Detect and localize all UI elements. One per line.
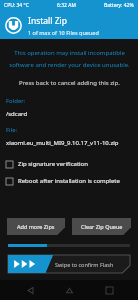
button[interactable]: Add more Zips: [7, 218, 65, 235]
staticText: 1 of max of 10 Files queued: [28, 29, 99, 36]
staticText: Folder:: [6, 97, 26, 105]
staticText: Add more Zips: [17, 223, 55, 230]
staticText: xiaomi.eu_multi_MI9_9.10.17_v11-10.zip: [6, 139, 119, 147]
staticText: Press back to cancel adding this zip.: [19, 79, 120, 87]
staticText: 6:32 AM: [57, 2, 76, 9]
button[interactable]: Back: [20, 280, 40, 300]
other: TWRP: [5, 17, 22, 34]
staticText: /sdcard: [6, 110, 28, 118]
staticText: Reboot after installation is complete: [18, 177, 120, 185]
button[interactable]: Home: [59, 280, 79, 300]
staticText: software and render your device unusable…: [9, 61, 130, 69]
button[interactable]: Zip signature verification: [0, 159, 138, 169]
staticText: This operation may install incompatible: [14, 49, 125, 57]
staticText: Zip signature verification: [18, 160, 88, 168]
staticText: Swipe to confirm Flash: [55, 261, 114, 268]
button[interactable]: Clear Zip Queue: [72, 218, 131, 235]
staticText: Clear Zip Queue: [81, 223, 123, 230]
staticText: Install Zip: [28, 15, 67, 27]
button[interactable]: TWRP: [0, 11, 138, 39]
staticText: File:: [6, 126, 18, 134]
staticText: Battery: 42%: [104, 2, 134, 9]
staticText: CPU: 34 °C: [4, 2, 29, 9]
button[interactable]: Swipe to confirm Flash: [8, 255, 130, 273]
button[interactable]: Recent apps: [99, 280, 119, 300]
button[interactable]: Reboot after installation is complete: [0, 176, 138, 186]
